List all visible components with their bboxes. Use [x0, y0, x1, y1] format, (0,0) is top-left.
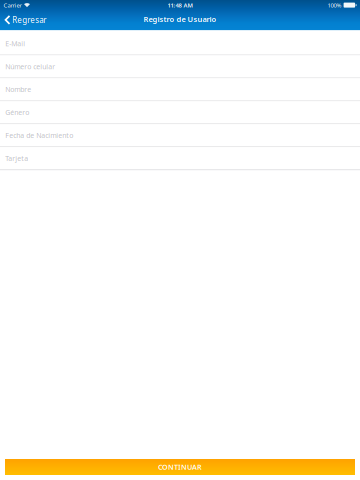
- staticText: 11:48 AM: [167, 1, 192, 9]
- staticText: 100%: [327, 1, 341, 9]
- button[interactable]: Regresar: [0, 9, 51, 31]
- staticText: Carrier: [3, 1, 21, 9]
- staticText: Nombre: [5, 85, 31, 94]
- staticText: Número celular: [5, 62, 55, 71]
- button[interactable]: Nombre: [0, 78, 360, 101]
- staticText: Género: [5, 108, 29, 117]
- staticText: Fecha de Nacimiento: [5, 131, 73, 140]
- button[interactable]: Tarjeta: [0, 147, 360, 170]
- button[interactable]: Número celular: [0, 55, 360, 78]
- button[interactable]: Fecha de Nacimiento: [0, 124, 360, 147]
- staticText: Registro de Usuario: [143, 14, 216, 24]
- button[interactable]: CONTINUAR: [5, 459, 355, 475]
- staticText: Regresar: [12, 14, 46, 25]
- staticText: Tarjeta: [5, 154, 28, 163]
- staticText: E-Mail: [5, 39, 25, 48]
- button[interactable]: E-Mail: [0, 32, 360, 55]
- staticText: CONTINUAR: [158, 462, 202, 472]
- button[interactable]: Género: [0, 101, 360, 124]
